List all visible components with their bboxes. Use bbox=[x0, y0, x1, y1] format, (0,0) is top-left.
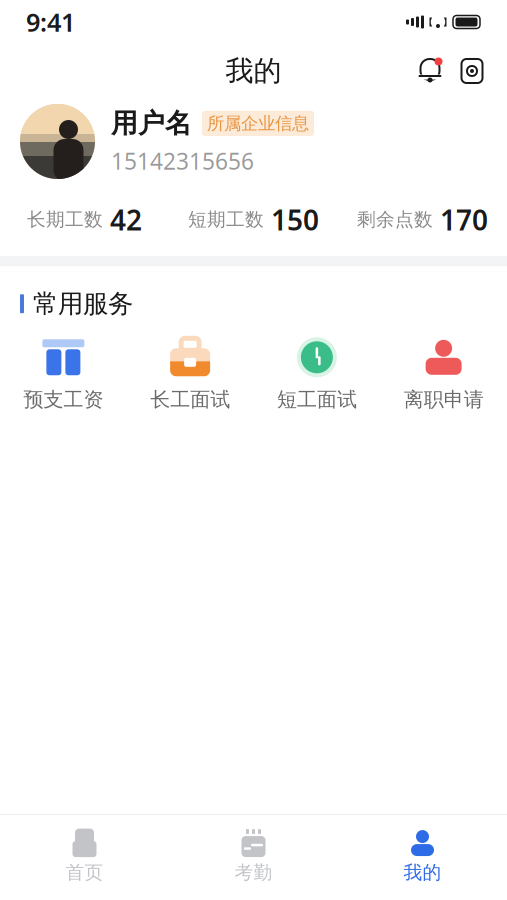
button[interactable]: 通知 bbox=[415, 56, 445, 86]
staticText: 常用服务 bbox=[33, 288, 133, 319]
staticText: 预支工资 bbox=[23, 387, 103, 412]
button[interactable]: 考勤 bbox=[169, 823, 338, 890]
staticText: 42 bbox=[110, 201, 142, 238]
staticText: 考勤 bbox=[234, 861, 272, 884]
staticText: 短期工数 bbox=[188, 208, 264, 231]
staticText: 15142315656 bbox=[111, 146, 254, 176]
button[interactable]: 我的 bbox=[338, 823, 507, 890]
staticText: 首页 bbox=[65, 861, 103, 884]
button[interactable]: 头像 bbox=[20, 104, 95, 179]
staticText: 我的 bbox=[403, 861, 441, 884]
staticText: 长工面试 bbox=[150, 387, 230, 412]
staticText: 我的 bbox=[225, 54, 281, 88]
staticText: 离职申请 bbox=[404, 387, 484, 412]
staticText: 长期工数 bbox=[27, 208, 103, 231]
staticText: 170 bbox=[440, 201, 488, 238]
button[interactable]: 首页 bbox=[0, 823, 169, 890]
staticText: 用户名 bbox=[111, 107, 192, 140]
button[interactable]: 所属企业信息 bbox=[202, 111, 314, 136]
button[interactable]: 设置 bbox=[457, 56, 487, 86]
staticText: 剩余点数 bbox=[357, 208, 433, 231]
button[interactable]: 长工面试 bbox=[135, 337, 245, 412]
staticText: 短工面试 bbox=[277, 387, 357, 412]
button[interactable]: 短工面试 bbox=[262, 337, 372, 412]
staticText: 所属企业信息 bbox=[207, 113, 309, 134]
staticText: 9:41 bbox=[26, 5, 75, 39]
button[interactable]: 离职申请 bbox=[389, 337, 499, 412]
staticText: 150 bbox=[271, 201, 319, 238]
button[interactable]: 预支工资 bbox=[8, 337, 118, 412]
